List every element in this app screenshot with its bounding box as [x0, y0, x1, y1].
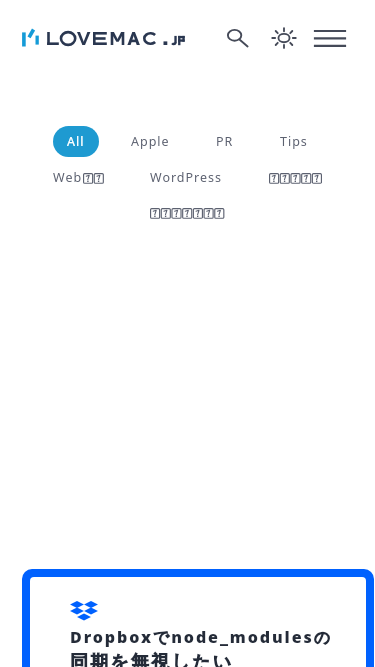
button[interactable]: WordPress	[136, 162, 237, 193]
button[interactable]	[255, 163, 337, 193]
staticText: 同期を無視したい	[70, 651, 234, 667]
button[interactable]: Apple	[117, 126, 184, 157]
button[interactable]: Tips	[266, 126, 322, 157]
button[interactable]: LOVEMAC.JP home	[16, 22, 196, 54]
staticText: Apple	[131, 133, 170, 150]
button[interactable]: Search	[218, 19, 258, 59]
button[interactable]	[136, 198, 239, 228]
staticText: Web	[53, 169, 83, 186]
staticText: All	[67, 133, 85, 150]
button[interactable]: Web	[39, 162, 118, 193]
button[interactable]: PR	[202, 126, 248, 157]
staticText: WordPress	[150, 169, 223, 186]
button[interactable]: All	[53, 126, 99, 157]
staticText: Tips	[280, 133, 308, 150]
button[interactable]: Open menu	[310, 18, 350, 58]
staticText: Dropboxでnode_modulesの	[70, 626, 332, 648]
staticText: PR	[216, 133, 234, 150]
button[interactable]: Dropboxでnode_modulesの	[22, 569, 374, 667]
button[interactable]: Toggle light mode	[264, 18, 304, 58]
